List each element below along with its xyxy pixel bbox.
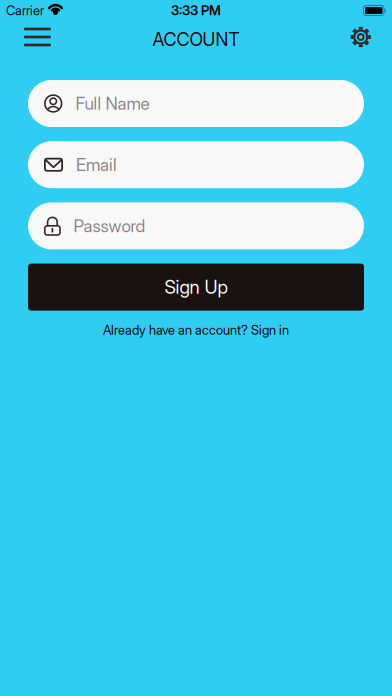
button[interactable]: Already have an account? Sign in: [103, 322, 289, 338]
staticText: 3:33 PM: [171, 2, 221, 18]
staticText: Email: [76, 154, 117, 175]
button[interactable]: Sign Up: [28, 264, 364, 311]
staticText: Already have an account? Sign in: [103, 322, 289, 338]
staticText: Carrier: [6, 3, 44, 18]
button[interactable]: Settings: [349, 26, 392, 48]
button[interactable]: Email: [28, 141, 364, 188]
staticText: Full Name: [75, 93, 149, 114]
button[interactable]: Password: [28, 202, 364, 249]
button[interactable]: Menu: [0, 28, 51, 46]
staticText: Sign Up: [164, 276, 227, 298]
button[interactable]: Full Name: [28, 80, 364, 127]
staticText: ACCOUNT: [152, 29, 239, 50]
staticText: Password: [73, 215, 145, 236]
